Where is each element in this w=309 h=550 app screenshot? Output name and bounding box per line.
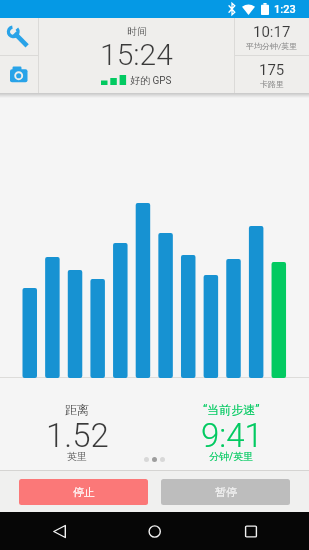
staticText: 卡路里	[260, 79, 284, 89]
button[interactable]	[206, 512, 309, 550]
staticText: 好的 GPS	[130, 74, 172, 85]
staticText: 1.52	[46, 416, 109, 455]
staticText: “当前步速”	[203, 402, 260, 417]
button[interactable]	[0, 18, 38, 55]
staticText: 15:24	[100, 37, 173, 72]
staticText: 9:41	[201, 416, 263, 455]
button[interactable]	[103, 512, 206, 550]
staticText: 10:17	[253, 23, 291, 41]
button[interactable]: 距离	[0, 378, 154, 470]
staticText: 1:23	[274, 3, 296, 16]
button[interactable]	[0, 56, 38, 93]
staticText: 175	[259, 61, 285, 79]
staticText: 分钟/英里	[209, 450, 254, 463]
staticText: 平均分钟/英里	[246, 41, 298, 51]
staticText: 英里	[67, 450, 87, 463]
staticText: 暂停	[215, 485, 237, 499]
button[interactable]: 停止	[19, 479, 148, 505]
button[interactable]	[0, 512, 103, 550]
button[interactable]: “当前步速”	[154, 378, 309, 470]
staticText: 停止	[73, 485, 95, 499]
button[interactable]: 暂停	[161, 479, 290, 505]
button[interactable]: 175	[235, 56, 309, 93]
button[interactable]: 10:17	[235, 18, 309, 55]
staticText: 时间	[127, 25, 147, 38]
staticText: 距离	[65, 402, 89, 417]
